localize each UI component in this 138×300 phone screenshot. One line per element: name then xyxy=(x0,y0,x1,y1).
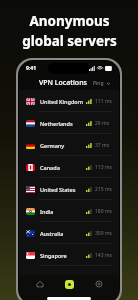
staticText: 37 ms xyxy=(95,142,110,149)
staticText: 143 ms xyxy=(95,252,112,259)
staticText: Ping xyxy=(93,80,104,87)
staticText: 29 ms xyxy=(95,120,110,127)
staticText: 180 ms xyxy=(95,208,112,215)
button[interactable]: Germany xyxy=(19,134,119,156)
staticText: VPN Locations xyxy=(39,78,87,88)
staticText: 215 ms xyxy=(95,186,112,193)
button[interactable]: VPN xyxy=(60,275,78,293)
button[interactable]: Australia xyxy=(19,222,119,244)
staticText: United States xyxy=(40,186,76,193)
button[interactable]: Settings xyxy=(90,275,108,293)
staticText: 309 ms xyxy=(95,230,112,237)
staticText: India xyxy=(40,208,54,215)
button[interactable]: Canada xyxy=(19,156,119,178)
button[interactable]: Home xyxy=(31,275,49,293)
button[interactable]: India xyxy=(19,200,119,222)
button[interactable]: Ping xyxy=(91,79,113,88)
staticText: Netherlands xyxy=(40,120,73,127)
staticText: 113 ms xyxy=(95,164,112,171)
staticText: Canada xyxy=(40,164,60,171)
staticText: Singapore xyxy=(40,252,67,259)
staticText: 111 ms xyxy=(95,98,112,105)
staticText: Germany xyxy=(40,142,65,149)
staticText: 9:41 xyxy=(26,65,36,72)
staticText: Australia xyxy=(40,230,64,237)
staticText: global servers xyxy=(22,32,117,50)
button[interactable]: United States xyxy=(19,178,119,200)
staticText: Anonymous xyxy=(29,12,110,30)
staticText: United Kingdom xyxy=(40,98,83,105)
button[interactable]: United Kingdom xyxy=(19,90,119,112)
button[interactable]: Singapore xyxy=(19,244,119,266)
button[interactable]: Netherlands xyxy=(19,112,119,134)
